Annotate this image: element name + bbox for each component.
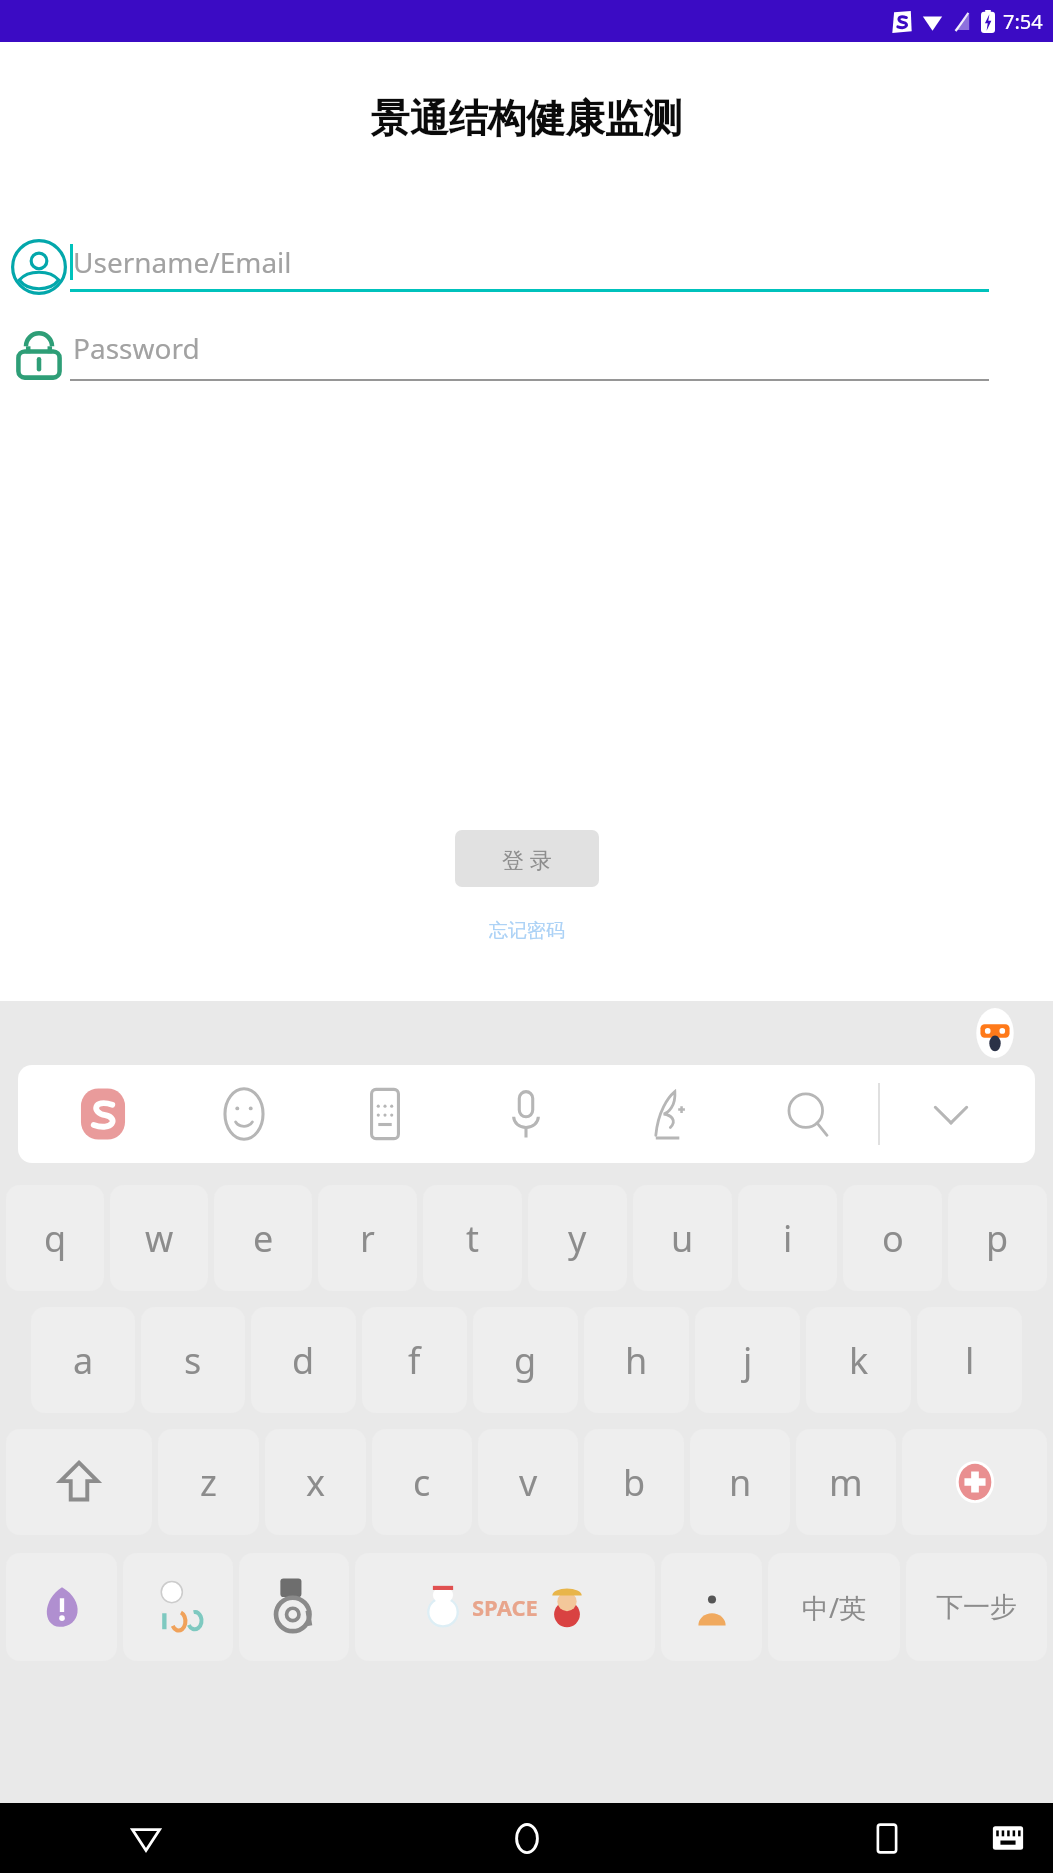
button[interactable]: u bbox=[633, 1185, 732, 1291]
staticText: w bbox=[145, 1214, 174, 1263]
button[interactable]: Username bbox=[10, 235, 989, 299]
button[interactable]: 中/英 bbox=[768, 1553, 900, 1661]
staticText: x bbox=[306, 1458, 326, 1507]
button[interactable]: k bbox=[806, 1307, 911, 1413]
staticText: p bbox=[986, 1214, 1009, 1263]
button[interactable]: l bbox=[917, 1307, 1022, 1413]
staticText: y bbox=[568, 1214, 587, 1263]
button[interactable]: Delete bbox=[902, 1429, 1047, 1535]
staticText: n bbox=[729, 1458, 752, 1507]
button[interactable]: i bbox=[738, 1185, 837, 1291]
staticText: 忘记密码 bbox=[489, 919, 565, 943]
staticText: 景通结构健康监测 bbox=[0, 94, 1053, 143]
staticText: v bbox=[519, 1458, 538, 1507]
button[interactable]: z bbox=[158, 1429, 259, 1535]
staticText: a bbox=[73, 1336, 94, 1385]
button[interactable]: 忘记密码 bbox=[473, 913, 581, 949]
staticText: c bbox=[413, 1458, 431, 1507]
button[interactable]: h bbox=[584, 1307, 689, 1413]
button[interactable]: Emoji bbox=[173, 1065, 314, 1163]
staticText: i bbox=[783, 1214, 793, 1263]
button[interactable]: p bbox=[948, 1185, 1047, 1291]
other: Password bbox=[10, 326, 68, 384]
button[interactable]: d bbox=[251, 1307, 356, 1413]
button[interactable]: r bbox=[318, 1185, 417, 1291]
staticText: g bbox=[514, 1336, 537, 1385]
button[interactable]: Handwriting bbox=[596, 1065, 737, 1163]
button[interactable]: q bbox=[6, 1185, 104, 1291]
staticText: t bbox=[466, 1214, 479, 1263]
button[interactable]: w bbox=[110, 1185, 208, 1291]
staticText: m bbox=[829, 1458, 863, 1507]
button[interactable]: Numbers bbox=[123, 1553, 233, 1661]
button[interactable]: Search bbox=[737, 1065, 878, 1163]
button[interactable]: Voice input bbox=[455, 1065, 596, 1163]
button[interactable]: b bbox=[584, 1429, 684, 1535]
staticText: q bbox=[44, 1214, 67, 1263]
staticText: Username/Email bbox=[73, 243, 292, 281]
button[interactable]: g bbox=[473, 1307, 578, 1413]
button[interactable]: e bbox=[214, 1185, 312, 1291]
button[interactable]: Sogou bbox=[32, 1065, 173, 1163]
button[interactable]: Hide keyboard bbox=[880, 1065, 1021, 1163]
staticText: SPACE bbox=[472, 1592, 538, 1622]
button[interactable]: Keyboard layout bbox=[314, 1065, 455, 1163]
button[interactable]: c bbox=[372, 1429, 472, 1535]
staticText: 7:54 bbox=[1003, 8, 1043, 35]
button[interactable]: o bbox=[843, 1185, 942, 1291]
button[interactable]: SPACE bbox=[355, 1553, 655, 1661]
button[interactable]: Back bbox=[120, 1812, 172, 1864]
staticText: r bbox=[360, 1214, 375, 1263]
button[interactable]: a bbox=[31, 1307, 135, 1413]
button[interactable]: Recent apps bbox=[863, 1814, 911, 1862]
button[interactable]: Shift bbox=[6, 1429, 152, 1535]
staticText: e bbox=[253, 1214, 274, 1263]
staticText: s bbox=[184, 1336, 202, 1385]
staticText: k bbox=[849, 1336, 869, 1385]
button[interactable]: Switch input method bbox=[987, 1817, 1029, 1859]
button[interactable]: m bbox=[796, 1429, 896, 1535]
staticText: f bbox=[408, 1336, 421, 1385]
staticText: j bbox=[743, 1336, 753, 1385]
staticText: Password bbox=[73, 329, 200, 367]
staticText: u bbox=[671, 1214, 694, 1263]
button[interactable]: Password bbox=[10, 323, 989, 387]
button[interactable]: f bbox=[362, 1307, 467, 1413]
button[interactable]: Period bbox=[661, 1553, 762, 1661]
button[interactable]: y bbox=[528, 1185, 627, 1291]
staticText: h bbox=[625, 1336, 648, 1385]
staticText: l bbox=[965, 1336, 975, 1385]
button[interactable]: 下一步 bbox=[906, 1553, 1047, 1661]
button[interactable]: v bbox=[478, 1429, 578, 1535]
staticText: 下一步 bbox=[936, 1590, 1017, 1624]
staticText: 中/英 bbox=[802, 1589, 867, 1626]
staticText: b bbox=[623, 1458, 646, 1507]
button[interactable]: Symbols bbox=[6, 1553, 117, 1661]
button[interactable]: j bbox=[695, 1307, 800, 1413]
button[interactable]: t bbox=[423, 1185, 522, 1291]
button[interactable]: At symbol bbox=[239, 1553, 349, 1661]
button[interactable]: x bbox=[265, 1429, 366, 1535]
button[interactable]: Home bbox=[501, 1812, 553, 1864]
staticText: o bbox=[882, 1214, 904, 1263]
button[interactable]: n bbox=[690, 1429, 790, 1535]
button[interactable]: s bbox=[141, 1307, 245, 1413]
staticText: 登 录 bbox=[502, 844, 552, 874]
button[interactable]: Assistant bbox=[969, 1007, 1021, 1059]
staticText: d bbox=[292, 1336, 315, 1385]
button[interactable]: 登 录 bbox=[455, 830, 599, 887]
other: Username bbox=[10, 238, 68, 296]
staticText: z bbox=[200, 1458, 217, 1507]
